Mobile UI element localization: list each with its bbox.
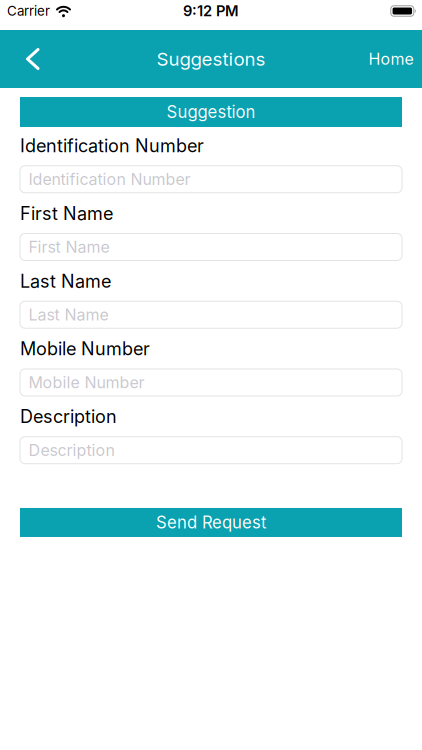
staticText: Last Name bbox=[28, 305, 108, 324]
staticText: Carrier bbox=[7, 3, 50, 19]
button[interactable]: Back bbox=[0, 30, 39, 88]
staticText: First Name bbox=[28, 237, 109, 256]
staticText: Last Name bbox=[20, 270, 111, 292]
staticText: Description bbox=[20, 406, 117, 427]
button[interactable]: Send Request bbox=[20, 508, 402, 537]
staticText: Suggestion bbox=[166, 102, 255, 122]
staticText: 9:12 PM bbox=[183, 2, 239, 20]
button[interactable]: Suggestion bbox=[20, 97, 402, 127]
staticText: Home bbox=[368, 50, 413, 68]
staticText: Send Request bbox=[156, 513, 266, 532]
button[interactable]: Home bbox=[368, 34, 422, 84]
staticText: Description bbox=[28, 441, 114, 460]
staticText: Identification Number bbox=[28, 170, 190, 189]
staticText: Mobile Number bbox=[28, 373, 144, 392]
staticText: Identification Number bbox=[20, 135, 204, 156]
staticText: Suggestions bbox=[156, 48, 265, 70]
staticText: First Name bbox=[20, 203, 113, 224]
staticText: Mobile Number bbox=[20, 338, 150, 359]
